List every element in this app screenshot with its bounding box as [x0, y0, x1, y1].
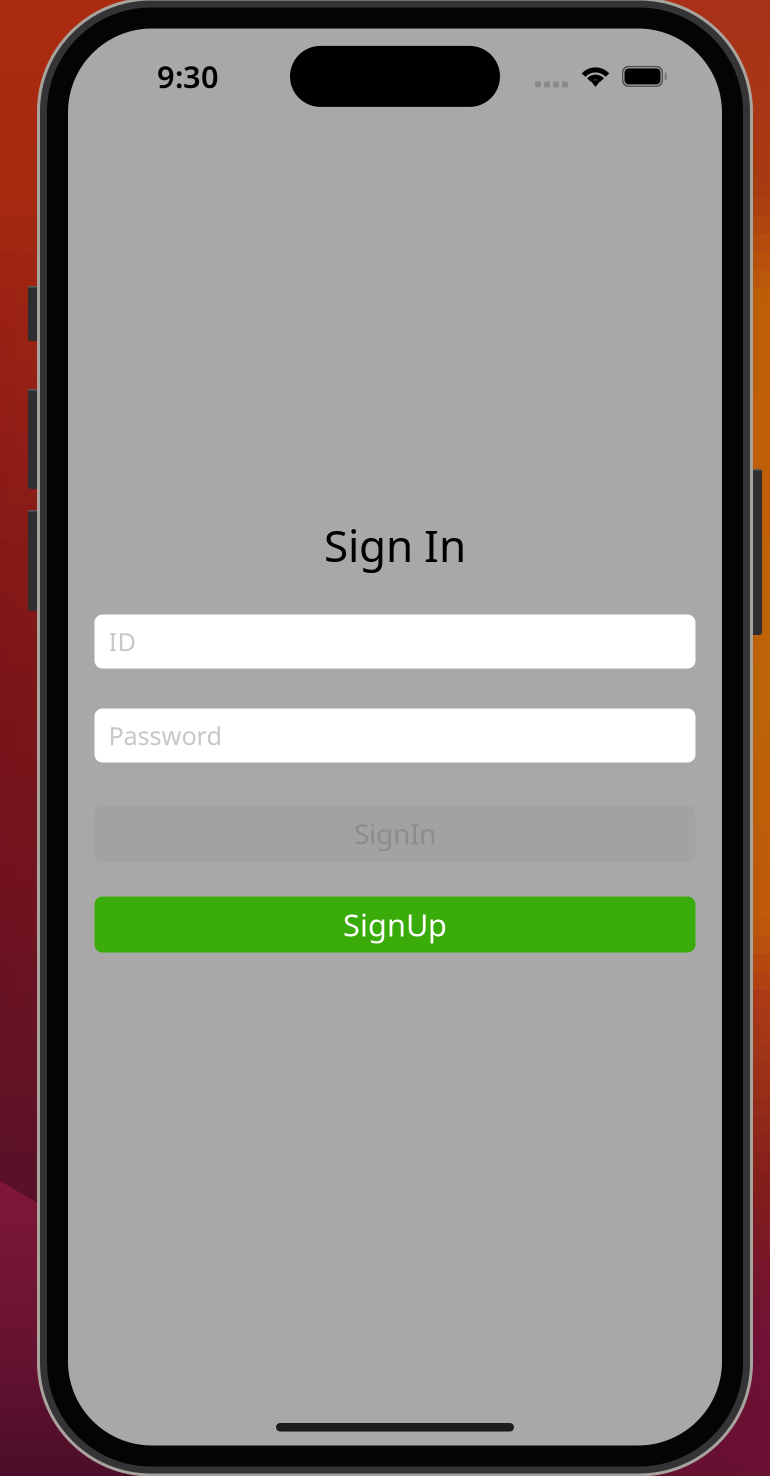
button[interactable]: Password: [94, 708, 695, 762]
staticText: SignIn: [354, 815, 436, 852]
staticText: Password: [108, 719, 222, 752]
staticText: 9:30: [157, 56, 219, 97]
button[interactable]: SignUp: [94, 896, 695, 952]
staticText: Sign In: [324, 516, 466, 574]
button[interactable]: ID: [94, 614, 695, 668]
staticText: ID: [108, 625, 135, 658]
staticText: SignUp: [343, 904, 447, 945]
